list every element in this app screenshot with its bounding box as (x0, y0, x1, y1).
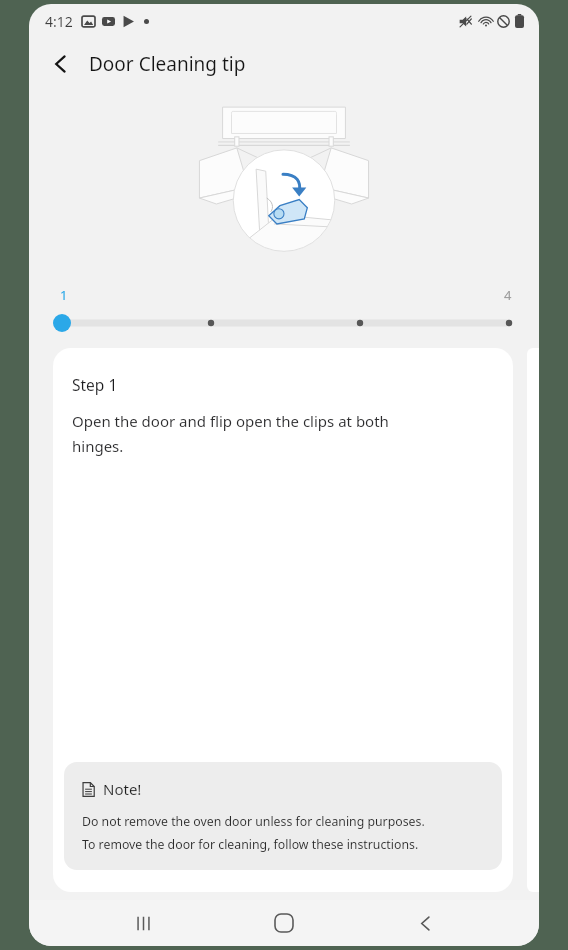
staticText: To remove the door for cleaning, follow … (82, 836, 419, 853)
button[interactable]: Home (257, 900, 311, 946)
staticText: 4:12 (45, 12, 73, 31)
staticText: Step 1 (72, 374, 118, 395)
button[interactable]: Recents (116, 900, 170, 946)
staticText: Note! (103, 779, 142, 799)
button[interactable]: Back (39, 42, 83, 86)
staticText: 4 (504, 286, 512, 304)
staticText: Open the door and flip open the clips at… (72, 411, 389, 456)
button[interactable]: Back (398, 900, 452, 946)
staticText: Door Cleaning tip (89, 51, 246, 77)
button[interactable]: Step progress (53, 312, 515, 332)
staticText: 1 (60, 286, 68, 304)
staticText: Do not remove the oven door unless for c… (82, 813, 425, 830)
button[interactable]: Step 1 (53, 348, 513, 892)
